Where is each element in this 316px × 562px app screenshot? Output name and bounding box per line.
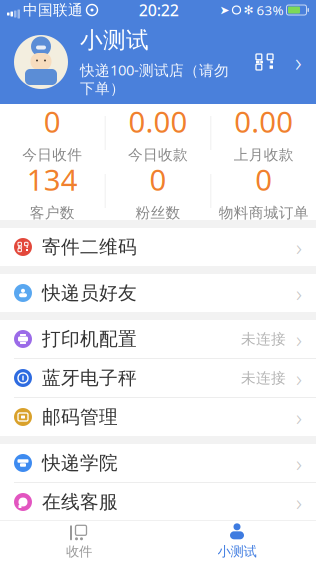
staticText: 未连接 (241, 369, 286, 387)
staticText: 上月收款 (234, 146, 294, 164)
staticText: 小测试 (80, 26, 149, 54)
staticText: 0 (255, 160, 272, 199)
staticText: 蓝牙电子秤 (42, 366, 137, 389)
staticText: 收件 (66, 543, 92, 560)
button[interactable]: 小测试 (158, 520, 316, 562)
staticText: › (296, 448, 302, 478)
staticText: › (296, 324, 302, 354)
staticText: 快递100-测试店（请勿下单） (80, 60, 229, 98)
staticText: 0 (44, 102, 61, 141)
staticText: 未连接 (241, 330, 286, 348)
button[interactable]: 快递学院 (0, 444, 316, 482)
staticText: 20:22 (139, 0, 179, 21)
staticText: 134 (27, 160, 78, 199)
staticText: 粉丝数 (135, 204, 180, 222)
staticText: 0.00 (234, 102, 293, 141)
button[interactable]: 邮码管理 (0, 398, 316, 436)
button[interactable]: 寄件二维码 (0, 228, 316, 266)
staticText: 寄件二维码 (42, 235, 137, 258)
button[interactable]: 商务合作 (0, 522, 316, 560)
staticText: 今日收款 (128, 146, 188, 164)
staticText: › (296, 232, 302, 262)
staticText: › (296, 402, 302, 432)
staticText: 小测试 (217, 543, 256, 560)
staticText: 今日收件 (22, 146, 82, 164)
staticText: ➤ (219, 3, 229, 17)
button[interactable]: 快递员好友 (0, 274, 316, 312)
button[interactable]: 蓝牙电子秤 (0, 359, 316, 397)
staticText: 在线客服 (42, 490, 118, 513)
staticText: › (295, 45, 302, 79)
staticText: › (296, 487, 302, 517)
button[interactable]: 收件 (0, 520, 158, 562)
staticText: 0.00 (128, 102, 187, 141)
staticText: 客户数 (30, 204, 75, 222)
staticText: ✻ (243, 3, 253, 17)
staticText: › (296, 278, 302, 308)
staticText: 商务合作 (42, 529, 118, 552)
button[interactable]: 小测试 (0, 20, 316, 104)
staticText: 快递员好友 (42, 281, 137, 304)
staticText: 快递学院 (42, 451, 118, 474)
staticText: 0 (149, 160, 166, 199)
staticText: 63% (256, 1, 283, 19)
staticText: › (296, 363, 302, 393)
staticText: 物料商城订单 (219, 204, 309, 222)
staticText: 邮码管理 (42, 405, 118, 428)
button[interactable]: 在线客服 (0, 483, 316, 521)
staticText: 中国联通 (23, 1, 83, 19)
button[interactable]: 打印机配置 (0, 320, 316, 358)
staticText: 打印机配置 (42, 327, 137, 350)
